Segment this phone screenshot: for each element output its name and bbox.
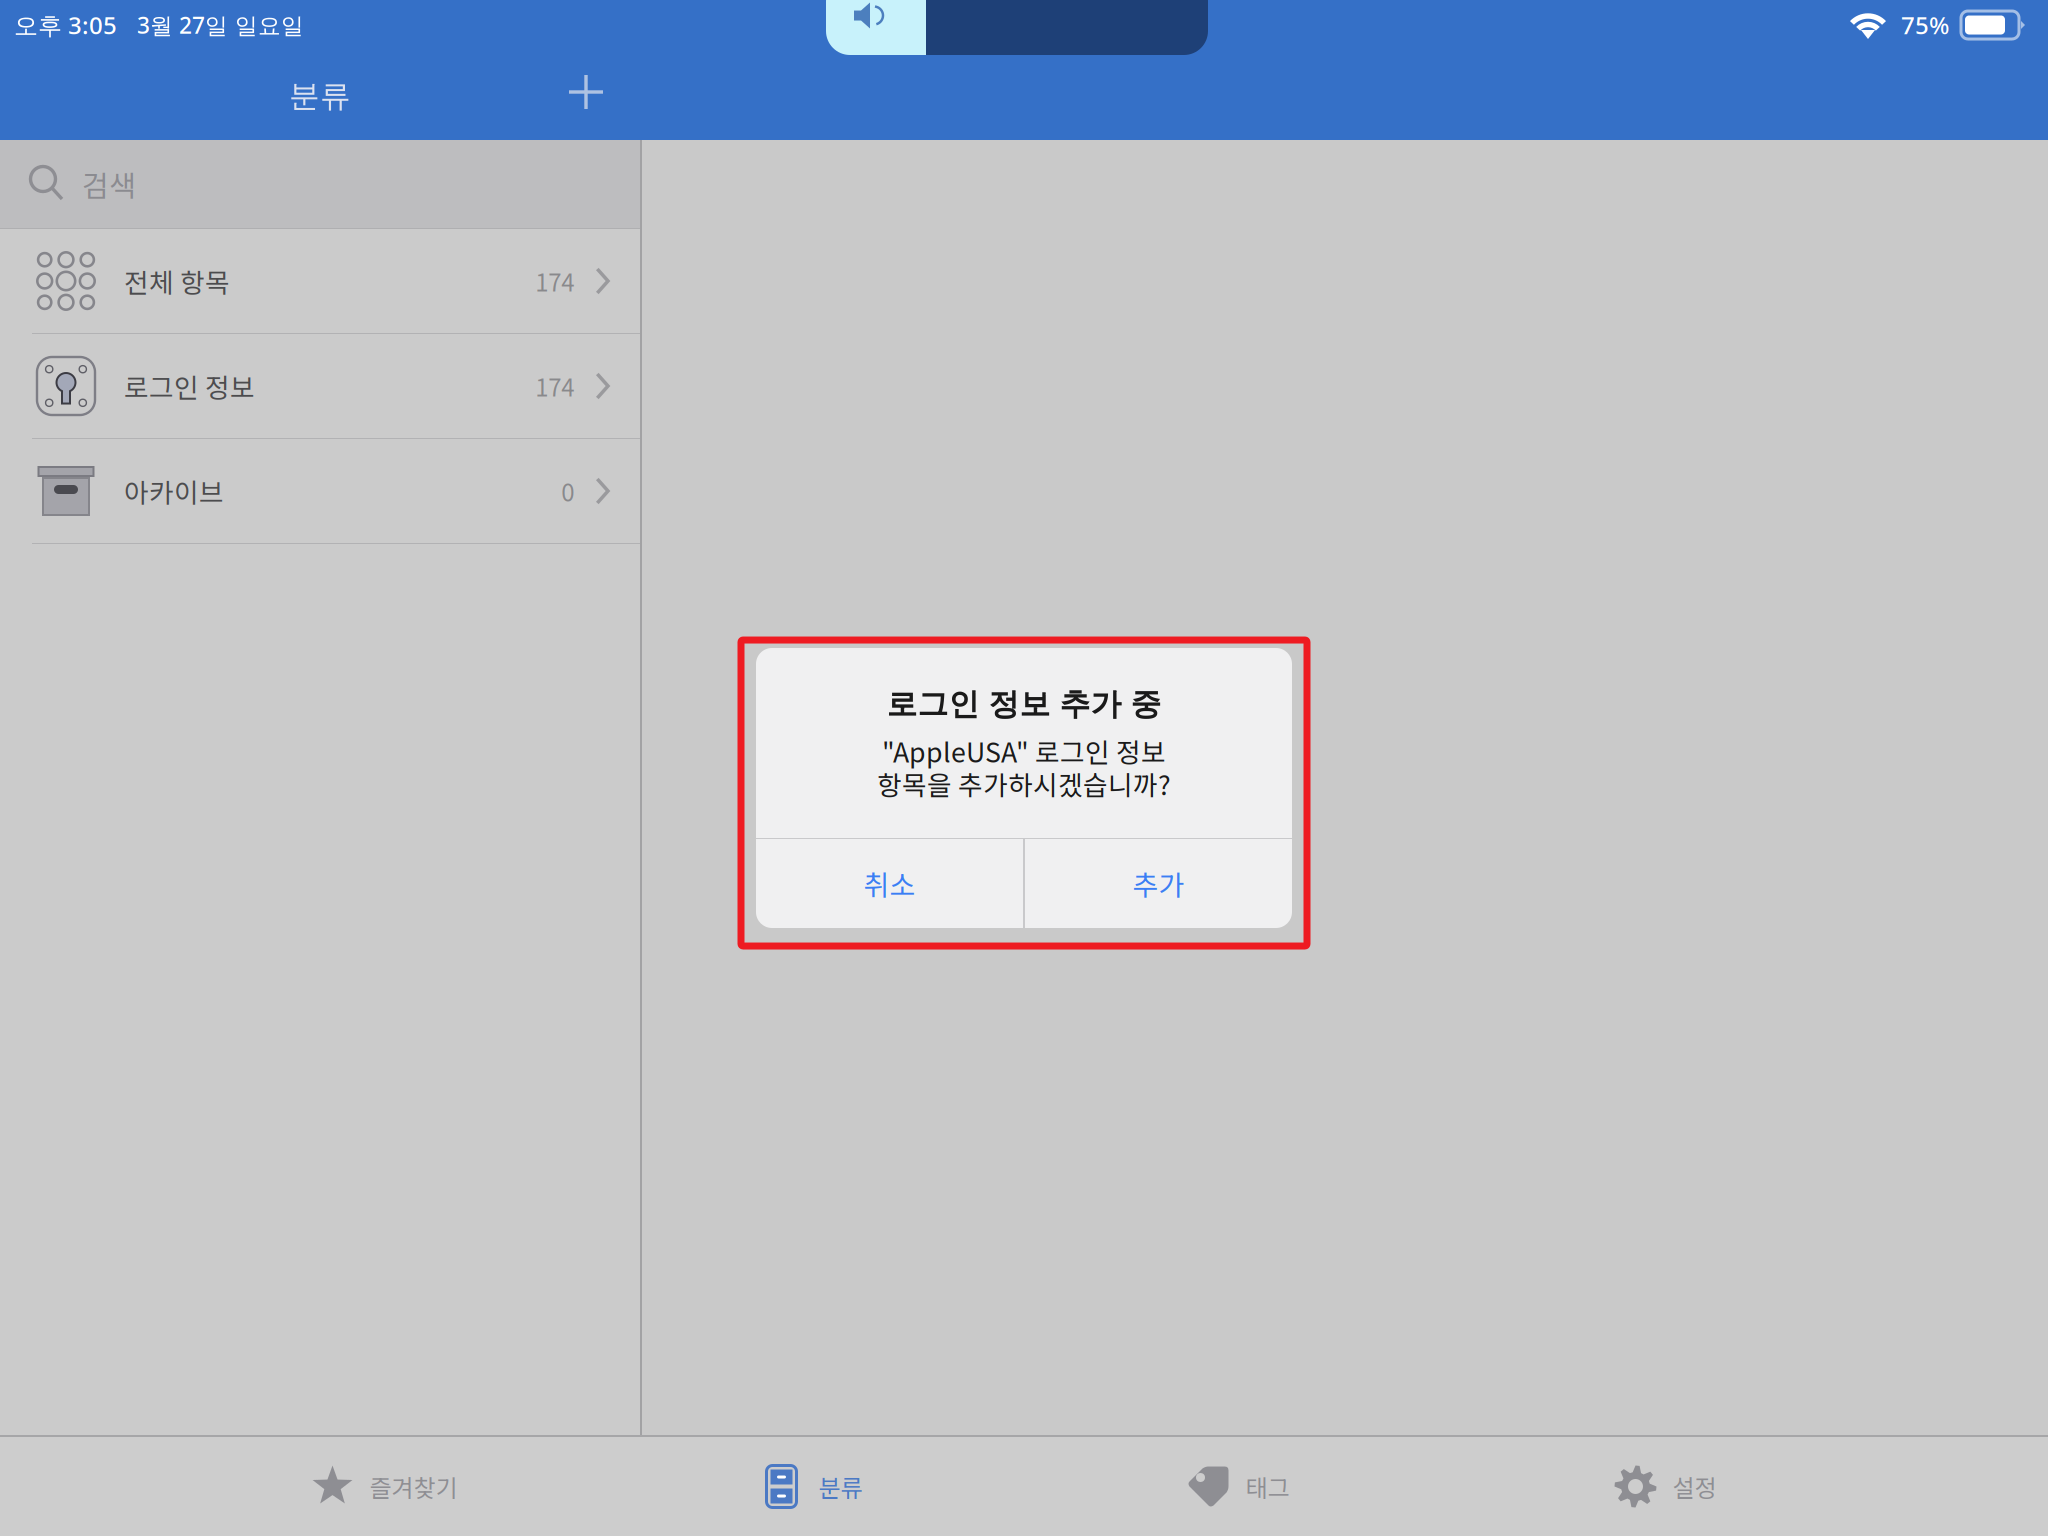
button[interactable]: 설정 [1451,1437,1878,1536]
staticText: 추가 [1132,863,1184,904]
button[interactable]: 즐겨찾기 [170,1437,597,1536]
staticText: 분류 [818,1469,862,1504]
staticText: 아카이브 [124,472,224,510]
button[interactable]: 취소 [756,839,1023,928]
button[interactable]: 로그인 정보 [0,334,640,439]
staticText: 3월 27일 일요일 [137,10,304,40]
staticText: 0 [561,474,574,508]
staticText: 항목을 추가하시겠습니까? [877,764,1171,803]
button[interactable]: 태그 [1024,1437,1451,1536]
staticText: 태그 [1245,1469,1289,1504]
button[interactable]: 전체 항목 [0,229,640,334]
staticText: 즐겨찾기 [369,1469,457,1504]
staticText: "AppleUSA" 로그인 정보 [882,732,1166,770]
staticText: 전체 항목 [124,262,230,300]
button[interactable]: New item [544,50,628,134]
staticText: 설정 [1672,1469,1716,1504]
staticText: 174 [535,369,574,403]
staticText: 75% [1901,9,1949,41]
staticText: 검색 [82,163,136,205]
staticText: 174 [535,264,574,298]
button[interactable]: 아카이브 [0,439,640,544]
staticText: 분류 [289,77,351,115]
staticText: 오후 3:05 [14,9,117,41]
staticText: 로그인 정보 [124,367,255,405]
staticText: 로그인 정보 추가 중 [886,685,1161,724]
button[interactable]: 분류 [597,1437,1024,1536]
button[interactable]: 추가 [1025,839,1292,928]
staticText: 취소 [863,863,915,904]
button[interactable]: 검색 [0,140,640,228]
